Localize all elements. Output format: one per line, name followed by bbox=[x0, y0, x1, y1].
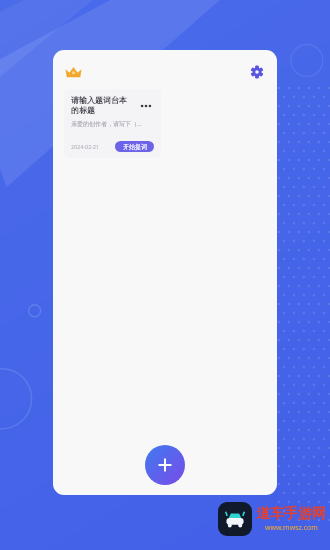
staticText: 亲爱的创作者，请写下（… bbox=[71, 120, 154, 128]
button[interactable]: Settings bbox=[243, 58, 271, 86]
staticText: 道车手游网 bbox=[256, 505, 326, 523]
button[interactable]: VIP bbox=[59, 58, 87, 86]
button[interactable]: More options bbox=[138, 99, 154, 113]
button[interactable]: 开始提词 bbox=[115, 141, 154, 152]
staticText: 2024·02·21 bbox=[71, 143, 100, 150]
button[interactable]: Add new script bbox=[145, 445, 185, 485]
staticText: 开始提词 bbox=[123, 143, 147, 151]
staticText: 请输入题词台本 的标题 bbox=[71, 95, 138, 116]
staticText: www.mwsz.com bbox=[265, 523, 318, 533]
button[interactable]: 请输入题词台本 的标题 bbox=[64, 89, 161, 158]
